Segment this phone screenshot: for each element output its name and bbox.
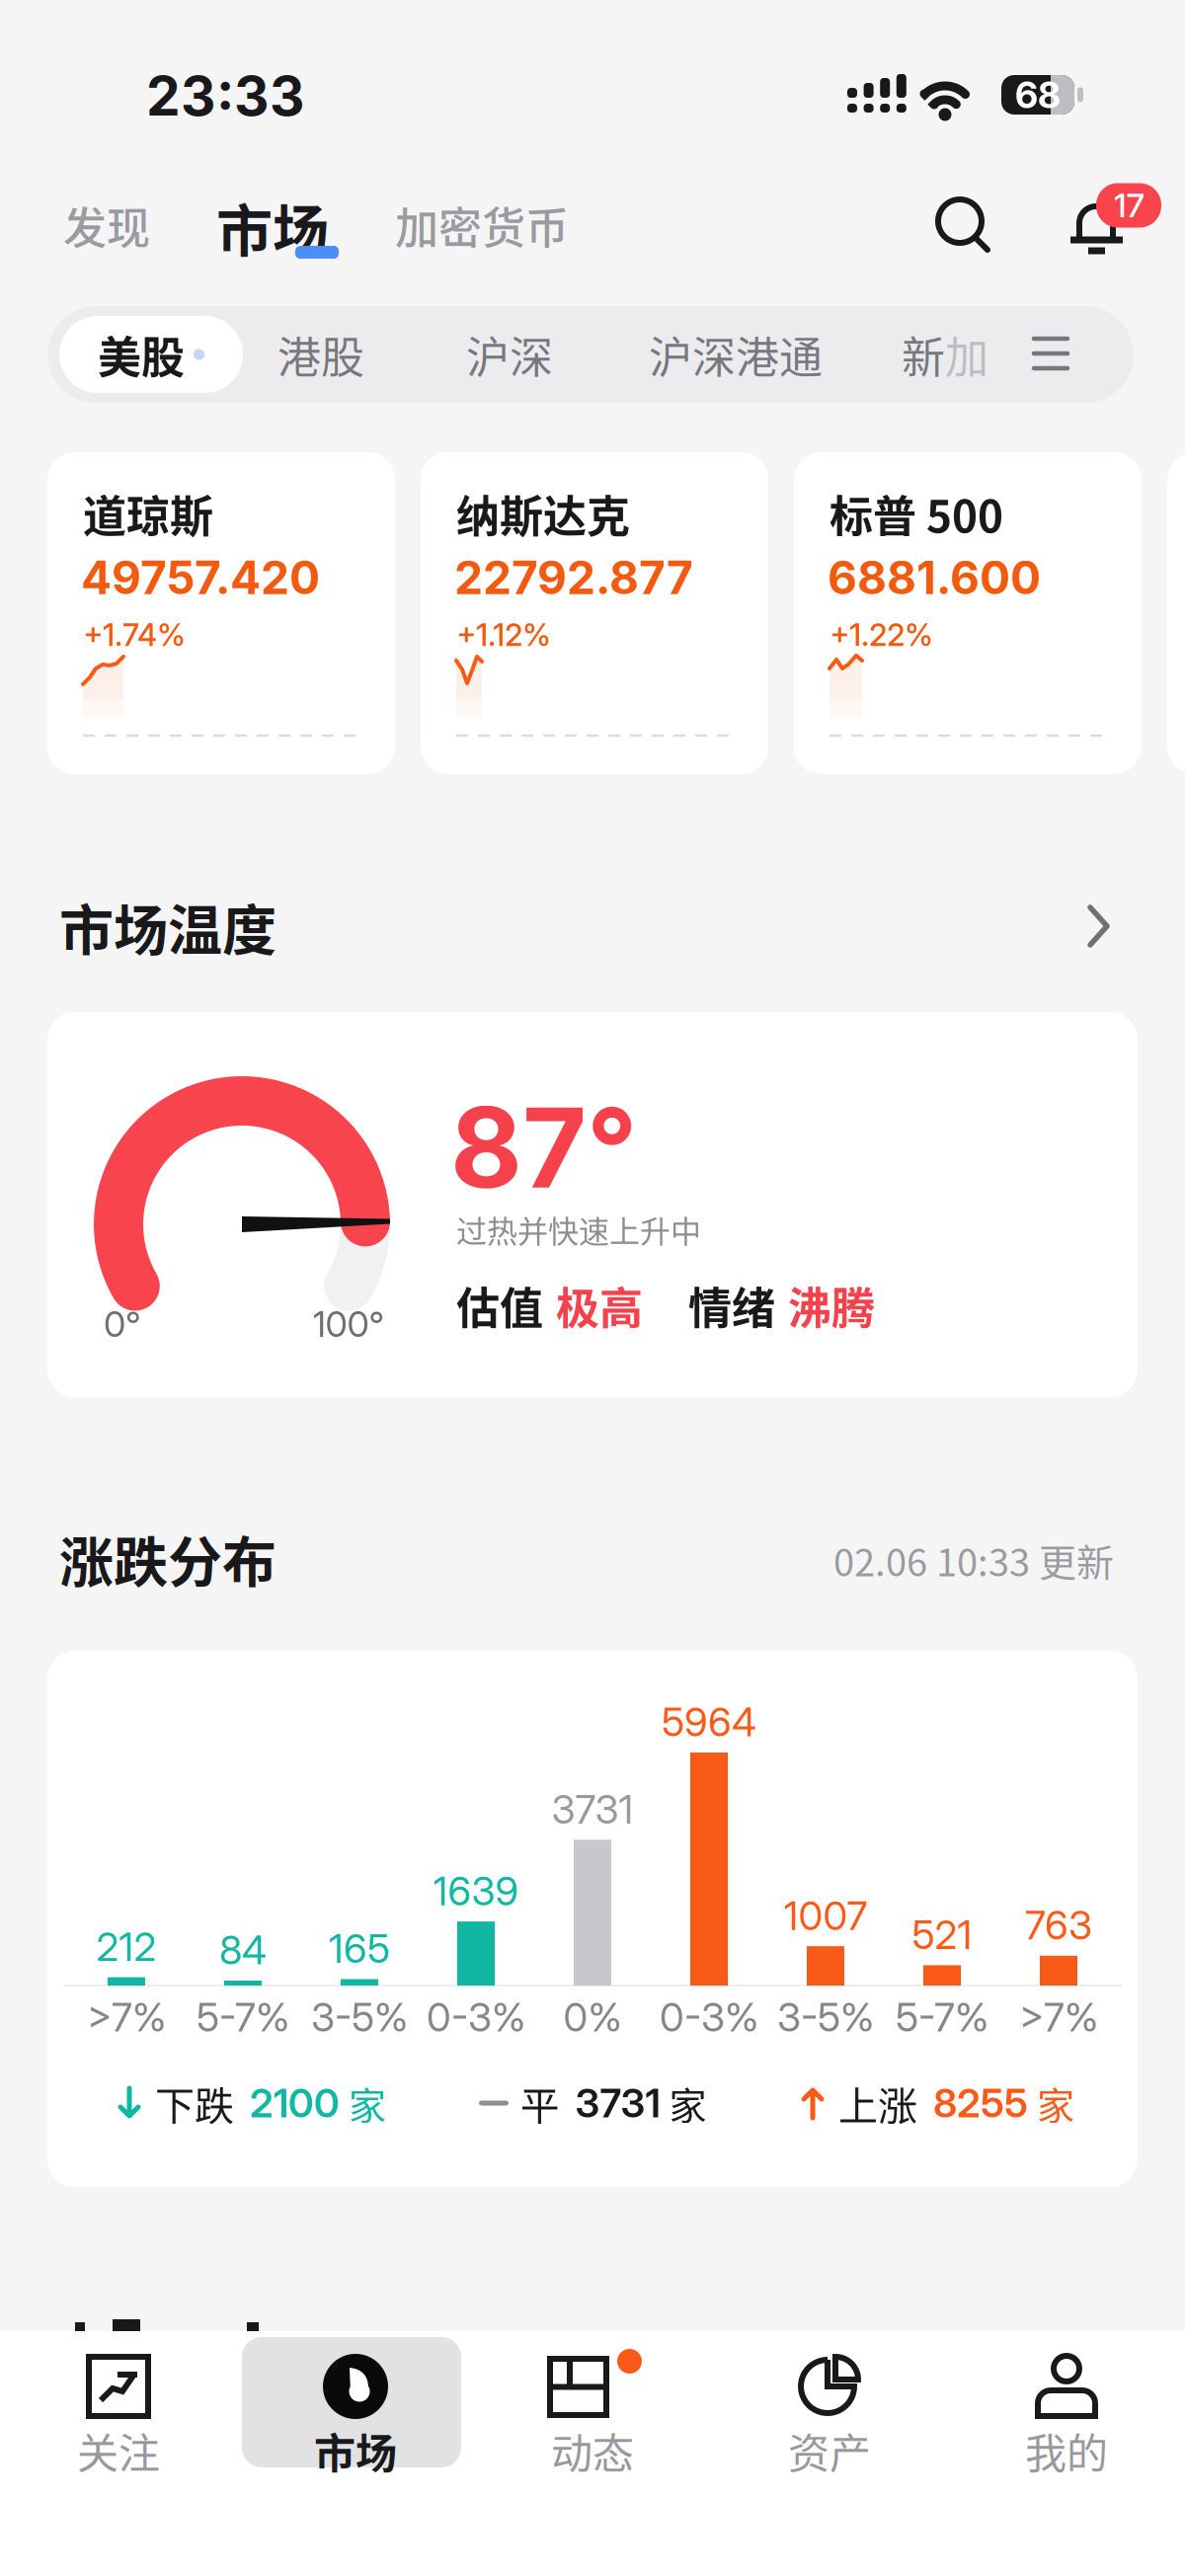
staticText: 市场 xyxy=(314,2421,397,2481)
staticText: 加 xyxy=(945,323,988,386)
staticText: 212 xyxy=(96,1923,157,1971)
staticText: 涨跌分布 xyxy=(59,1519,276,1597)
staticText: 家 xyxy=(669,2076,707,2130)
button[interactable]: 标普 500 xyxy=(794,452,1142,774)
staticText: 发现 xyxy=(63,194,150,257)
staticText: 5-7% xyxy=(896,1993,988,2041)
staticText: 美股 xyxy=(98,323,185,386)
staticText: 1639 xyxy=(433,1867,519,1915)
button[interactable]: 搜索 xyxy=(934,195,993,255)
staticText: 0-3% xyxy=(660,1993,758,2041)
staticText: 3-5% xyxy=(777,1993,874,2041)
staticText: 5-7% xyxy=(197,1993,289,2041)
staticText: +1.22% xyxy=(829,616,933,653)
staticText: 纳斯达克 xyxy=(456,482,630,545)
button[interactable]: 更多市场 xyxy=(1034,337,1067,370)
staticText: 下跌 xyxy=(155,2074,234,2132)
staticText: 加密货币 xyxy=(395,194,569,257)
staticText: 家 xyxy=(349,2076,386,2130)
staticText: 22792.877 xyxy=(454,550,693,605)
staticText: 165 xyxy=(329,1925,390,1972)
staticText: 估值 xyxy=(456,1274,543,1337)
button[interactable]: 沪深港通 xyxy=(649,323,823,386)
button[interactable]: 发现 xyxy=(63,194,150,257)
staticText: 2100 xyxy=(250,2079,340,2127)
staticText: 0-3% xyxy=(427,1993,525,2041)
staticText: >7% xyxy=(1019,1993,1098,2041)
staticText: 我的 xyxy=(1025,2421,1108,2481)
staticText: 49757.420 xyxy=(81,550,320,605)
button[interactable]: 加密货币 xyxy=(395,194,569,257)
button[interactable]: 道琼斯 xyxy=(47,452,395,774)
button[interactable]: 市场温度 xyxy=(47,895,1138,958)
staticText: 上涨 xyxy=(838,2074,917,2132)
button[interactable]: 资产 xyxy=(711,2326,948,2484)
button[interactable]: 纳斯达克 xyxy=(421,452,768,774)
button[interactable]: 我的 xyxy=(948,2326,1185,2484)
button[interactable]: 0° xyxy=(47,1012,1138,1397)
staticText: 沪深港通 xyxy=(649,323,823,386)
button[interactable]: 港股 xyxy=(277,323,364,386)
staticText: 沪深 xyxy=(466,323,553,386)
staticText: 资产 xyxy=(788,2421,871,2481)
staticText: 100° xyxy=(313,1303,385,1346)
button[interactable]: 通知 xyxy=(1070,196,1161,270)
staticText: 23:33 xyxy=(146,63,305,129)
staticText: 5964 xyxy=(662,1698,756,1746)
button[interactable]: 市场 xyxy=(237,2326,474,2484)
staticText: 过热并快速上升中 xyxy=(456,1207,701,1251)
staticText: 动态 xyxy=(551,2421,634,2481)
staticText: 家 xyxy=(1037,2076,1074,2130)
button[interactable]: 新 xyxy=(902,323,988,386)
staticText: 市场温度 xyxy=(59,887,276,965)
button[interactable]: 动态 xyxy=(474,2326,711,2484)
staticText: 3731 xyxy=(575,2079,660,2127)
staticText: 港股 xyxy=(277,323,364,386)
staticText: 平 xyxy=(520,2074,559,2132)
staticText: 521 xyxy=(912,1911,972,1959)
button[interactable]: 美股 xyxy=(59,316,243,393)
staticText: 763 xyxy=(1025,1901,1092,1949)
staticText: 关注 xyxy=(77,2421,160,2481)
staticText: 87° xyxy=(450,1080,637,1214)
staticText: 68 xyxy=(1015,73,1061,117)
staticText: 极高 xyxy=(556,1274,643,1337)
staticText: 情绪 xyxy=(688,1274,775,1337)
button[interactable]: 市场 xyxy=(208,183,337,272)
staticText: 17 xyxy=(1113,185,1144,226)
staticText: 道琼斯 xyxy=(83,482,213,545)
staticText: 8255 xyxy=(933,2079,1028,2127)
staticText: 标普 500 xyxy=(829,482,1003,545)
staticText: 02.06 10:33 更新 xyxy=(833,1533,1114,1587)
staticText: +1.74% xyxy=(83,616,186,653)
staticText: 84 xyxy=(219,1926,267,1974)
staticText: 0% xyxy=(563,1993,622,2041)
staticText: 3-5% xyxy=(311,1993,408,2041)
staticText: 6881.600 xyxy=(828,550,1041,605)
button[interactable]: 关注 xyxy=(0,2326,237,2484)
staticText: 市场 xyxy=(216,186,329,268)
staticText: 新 xyxy=(902,323,945,386)
staticText: 3731 xyxy=(552,1785,633,1833)
button[interactable]: 沪深 xyxy=(466,323,553,386)
staticText: >7% xyxy=(87,1993,166,2041)
staticText: 0° xyxy=(104,1303,141,1346)
staticText: 1007 xyxy=(784,1892,868,1940)
staticText: +1.12% xyxy=(456,616,551,653)
staticText: 沸腾 xyxy=(788,1274,875,1337)
